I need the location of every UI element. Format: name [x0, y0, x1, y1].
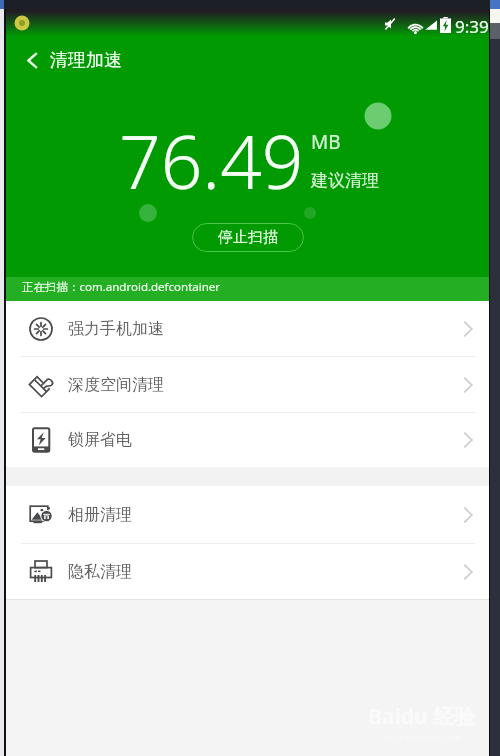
button[interactable]: Back: [14, 42, 50, 78]
staticText: 76.49: [119, 111, 304, 210]
button[interactable]: 深度空间清理: [6, 357, 490, 412]
staticText: 正在扫描：com.android.defcontainer: [22, 279, 221, 295]
staticText: 停止扫描: [218, 228, 278, 247]
button[interactable]: 隐私清理: [6, 544, 490, 599]
staticText: 强力手机加速: [68, 319, 164, 339]
staticText: 建议清理: [311, 170, 379, 191]
staticText: MB: [311, 129, 341, 155]
button[interactable]: 相册清理: [6, 486, 490, 543]
staticText: 深度空间清理: [68, 375, 164, 395]
staticText: 相册清理: [68, 505, 132, 525]
button[interactable]: 锁屏省电: [6, 413, 490, 467]
staticText: 隐私清理: [68, 562, 132, 582]
staticText: 锁屏省电: [68, 430, 132, 450]
button[interactable]: 强力手机加速: [6, 301, 490, 356]
staticText: 清理加速: [50, 49, 122, 72]
button[interactable]: 停止扫描: [192, 223, 304, 252]
staticText: 9:39: [455, 15, 489, 38]
